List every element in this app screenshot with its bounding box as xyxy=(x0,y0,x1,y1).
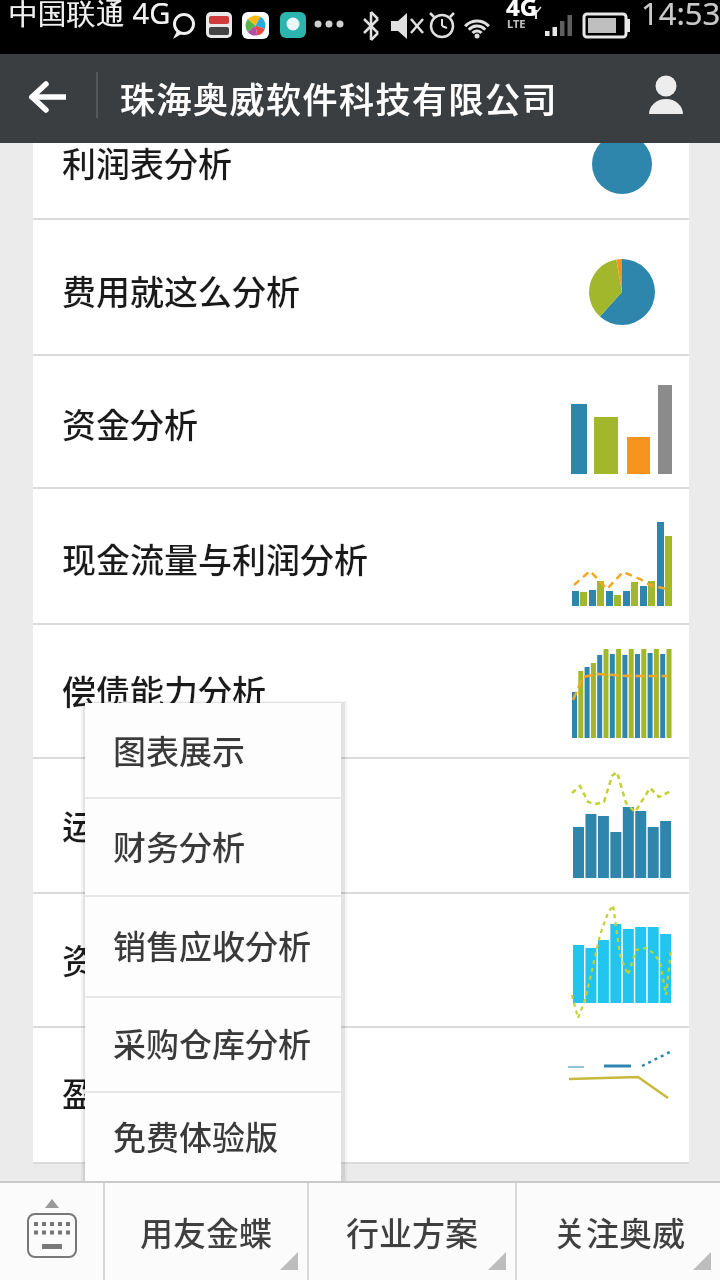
staticText: 珠海奥威软件科技有限公司 xyxy=(120,72,559,123)
button[interactable]: 利润表分析 xyxy=(33,143,689,218)
button[interactable]: 关注奥威 xyxy=(517,1183,720,1280)
staticText: 利润表分析 xyxy=(62,138,232,187)
button[interactable]: 采购仓库分析 xyxy=(85,996,341,1091)
staticText: 财务分析 xyxy=(113,822,245,870)
button[interactable]: 资产负债分析 xyxy=(33,892,689,1026)
button[interactable]: 图表展示 xyxy=(85,703,341,797)
staticText: 偿债能力分析 xyxy=(62,666,266,715)
staticText: 14:53 xyxy=(641,0,720,34)
button[interactable]: 财务分析 xyxy=(85,797,341,895)
button[interactable]: 资金分析 xyxy=(33,354,689,487)
button[interactable]: 偿债能力分析 xyxy=(33,623,689,757)
staticText: 中国联通 4G xyxy=(9,0,171,33)
button[interactable]: 用友金蝶 xyxy=(105,1183,307,1280)
button[interactable]: 运营能力分析 xyxy=(33,757,689,892)
staticText: 行业方案 xyxy=(346,1208,478,1256)
staticText: 费用就这么分析 xyxy=(62,266,300,315)
staticText: 图表展示 xyxy=(113,726,245,774)
staticText: 现金流量与利润分析 xyxy=(62,534,368,583)
staticText: 用友金蝶 xyxy=(140,1208,272,1256)
staticText: 资产负债分析 xyxy=(62,935,266,984)
button[interactable] xyxy=(0,1183,103,1280)
staticText: 盈利能力分析 xyxy=(62,1068,266,1117)
button[interactable]: 销售应收分析 xyxy=(85,895,341,996)
staticText: 运营能力分析 xyxy=(62,801,266,850)
staticText: 关注奥威 xyxy=(553,1208,685,1256)
staticText: LTE xyxy=(507,16,526,31)
staticText: 销售应收分析 xyxy=(113,921,311,969)
button[interactable]: 免费体验版 xyxy=(85,1091,341,1182)
staticText: 4G xyxy=(506,0,538,23)
button[interactable]: 行业方案 xyxy=(309,1183,515,1280)
staticText: 免费体验版 xyxy=(113,1112,278,1160)
staticText: 资金分析 xyxy=(62,399,198,448)
button[interactable]: 现金流量与利润分析 xyxy=(33,487,689,623)
staticText: 采购仓库分析 xyxy=(113,1019,311,1067)
button[interactable] xyxy=(16,72,86,122)
button[interactable]: 盈利能力分析 xyxy=(33,1026,689,1162)
button[interactable] xyxy=(638,72,694,128)
button[interactable]: 费用就这么分析 xyxy=(33,218,689,354)
